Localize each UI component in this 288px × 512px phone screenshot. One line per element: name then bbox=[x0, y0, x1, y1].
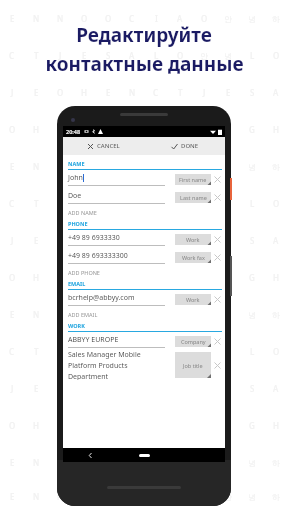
button[interactable]: ADD NAME bbox=[68, 206, 222, 219]
staticText: +49 89 693333300 bbox=[68, 251, 128, 261]
button[interactable]: Delete field bbox=[213, 235, 222, 244]
staticText: O bbox=[9, 272, 16, 283]
staticText: Last name bbox=[180, 194, 207, 201]
staticText: O bbox=[9, 124, 16, 135]
staticText: O bbox=[105, 13, 112, 24]
button[interactable]: First name bbox=[175, 174, 211, 185]
button[interactable]: Home bbox=[117, 448, 171, 462]
staticText: 하 bbox=[272, 310, 280, 320]
button[interactable]: Company bbox=[175, 336, 211, 347]
staticText: C bbox=[9, 346, 15, 357]
button[interactable]: Work bbox=[175, 234, 211, 245]
staticText: DONE bbox=[181, 142, 199, 150]
staticText: T bbox=[82, 309, 87, 320]
staticText: E bbox=[10, 13, 15, 24]
staticText: ADD EMAIL bbox=[68, 311, 98, 318]
button[interactable]: Work fax bbox=[175, 252, 211, 263]
staticText: 안 bbox=[224, 14, 232, 24]
staticText: C bbox=[153, 235, 159, 246]
staticText: Редактируйте bbox=[76, 22, 212, 48]
staticText: ABBYY EUROPE bbox=[68, 335, 119, 345]
staticText: E bbox=[10, 457, 15, 468]
staticText: S bbox=[106, 50, 111, 61]
staticText: H bbox=[225, 272, 231, 283]
staticText: +49 89 6933330 bbox=[68, 233, 120, 243]
staticText: O bbox=[201, 124, 208, 135]
staticText: H bbox=[81, 87, 87, 98]
button[interactable]: DONE bbox=[144, 137, 225, 155]
staticText: E bbox=[106, 87, 111, 98]
staticText: 녕 bbox=[248, 458, 256, 468]
staticText: H bbox=[33, 420, 39, 431]
button[interactable]: Sales Manager Mobile bbox=[68, 350, 222, 380]
staticText: E bbox=[34, 87, 39, 98]
button[interactable]: Delete field bbox=[213, 193, 222, 202]
staticText: H bbox=[129, 346, 135, 357]
button[interactable]: +49 89 693333300 bbox=[68, 248, 222, 266]
staticText: O bbox=[105, 346, 112, 357]
button[interactable]: Back bbox=[63, 448, 117, 462]
staticText: E bbox=[82, 50, 87, 61]
button[interactable]: Delete field bbox=[213, 361, 222, 370]
staticText: N bbox=[81, 124, 88, 135]
staticText: N bbox=[33, 309, 40, 320]
staticText: G bbox=[249, 124, 255, 135]
staticText: NAME bbox=[68, 160, 85, 167]
staticText: Work fax bbox=[182, 254, 205, 261]
staticText: контактные данные bbox=[45, 51, 244, 77]
staticText: 안 bbox=[200, 51, 208, 61]
button[interactable]: Last name bbox=[175, 192, 211, 203]
staticText: N bbox=[57, 491, 64, 502]
staticText: N bbox=[33, 13, 40, 24]
staticText: WORK bbox=[68, 322, 85, 329]
staticText: E bbox=[154, 198, 159, 209]
staticText: G bbox=[249, 420, 255, 431]
button[interactable]: ADD PHONE bbox=[68, 266, 222, 279]
button[interactable]: ABBYY EUROPE bbox=[68, 332, 222, 350]
button[interactable]: ADD EMAIL bbox=[68, 308, 222, 321]
staticText: ADD PHONE bbox=[68, 269, 100, 276]
staticText: N bbox=[225, 161, 232, 172]
staticText: I bbox=[155, 13, 158, 24]
staticText: T bbox=[130, 124, 135, 135]
staticText: O bbox=[273, 198, 280, 209]
staticText: O bbox=[105, 198, 112, 209]
button[interactable]: Work bbox=[175, 294, 211, 305]
staticText: N bbox=[33, 491, 40, 502]
button[interactable]: Delete field bbox=[213, 295, 222, 304]
button[interactable]: Delete field bbox=[213, 253, 222, 262]
button[interactable]: CANCEL bbox=[63, 137, 144, 155]
staticText: L bbox=[250, 346, 255, 357]
button[interactable]: +49 89 6933330 bbox=[68, 230, 222, 248]
button[interactable]: bcrhelp@abbyy.com bbox=[68, 290, 222, 308]
staticText: O bbox=[81, 13, 88, 24]
staticText: H bbox=[273, 124, 279, 135]
staticText: N bbox=[177, 346, 184, 357]
staticText: A bbox=[177, 13, 183, 24]
button[interactable]: John bbox=[68, 170, 222, 188]
staticText: T bbox=[82, 161, 87, 172]
staticText: 녕 bbox=[248, 492, 256, 502]
staticText: E bbox=[10, 491, 15, 502]
staticText: John bbox=[68, 173, 83, 183]
button[interactable]: Doe bbox=[68, 188, 222, 206]
button[interactable]: Delete field bbox=[213, 175, 222, 184]
staticText: E bbox=[10, 161, 15, 172]
staticText: E bbox=[226, 87, 231, 98]
button[interactable]: Delete field bbox=[213, 337, 222, 346]
